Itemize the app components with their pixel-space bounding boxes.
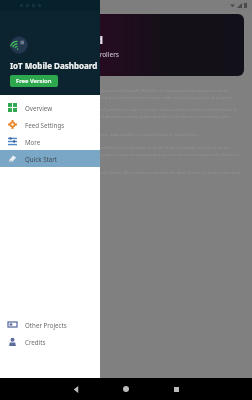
button[interactable]: Free Version — [16, 77, 52, 85]
button[interactable]: Back — [63, 378, 89, 400]
staticText: Credits — [25, 338, 46, 346]
staticText: This application is a great allow for vi… — [10, 132, 242, 138]
button[interactable]: Quick Start — [0, 150, 100, 167]
staticText: Initial State with Microcontrollers — [18, 50, 119, 59]
button[interactable]: Other Projects — [0, 316, 100, 333]
button[interactable]: Home — [113, 378, 139, 400]
staticText: Feed Settings — [25, 121, 65, 129]
button[interactable]: Overview — [0, 99, 100, 116]
staticText: Overview — [25, 104, 52, 112]
staticText: Getting Started — [18, 32, 103, 47]
button[interactable]: Feed Settings — [0, 116, 100, 133]
button[interactable]: Recent apps — [163, 378, 189, 400]
staticText: There is no denying that we live in our … — [10, 88, 242, 100]
staticText: Free Version — [16, 77, 52, 85]
staticText: Note: This application requires you to h… — [10, 170, 242, 182]
staticText: IoT Mobile Dashboard — [10, 60, 98, 71]
button[interactable]: More — [0, 133, 100, 150]
staticText: This application makes use of the Initia… — [10, 107, 242, 125]
staticText: More — [25, 138, 41, 146]
staticText: Other Projects — [25, 321, 67, 329]
button[interactable]: Getting Started — [8, 14, 244, 76]
staticText: Quick Start — [25, 155, 58, 163]
staticText: To get started, it is advised to read th… — [10, 145, 242, 163]
button[interactable]: Credits — [0, 333, 100, 350]
